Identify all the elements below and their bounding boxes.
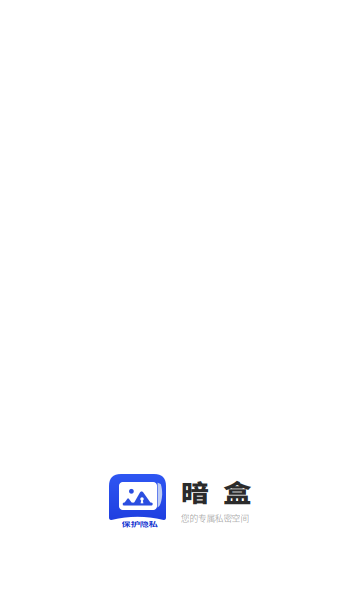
- staticText: 保护隐私: [121, 519, 157, 532]
- staticText: 盒: [223, 474, 251, 514]
- staticText: 您的专属私密空间: [181, 511, 253, 524]
- staticText: 暗: [181, 474, 209, 514]
